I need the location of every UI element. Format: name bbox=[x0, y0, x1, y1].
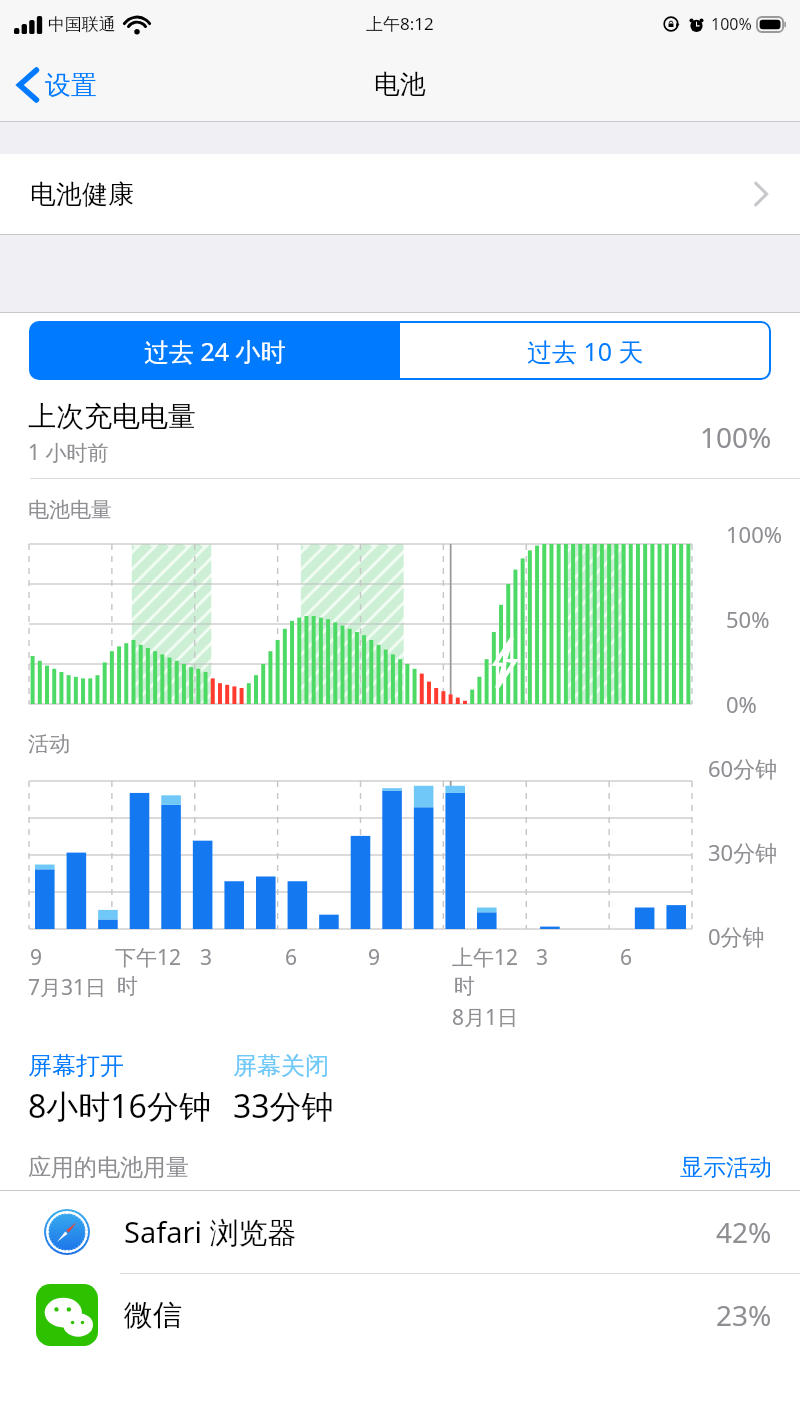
staticText: 电池 bbox=[374, 68, 426, 101]
staticText: 过去 10 天 bbox=[527, 334, 644, 368]
staticText: 电池健康 bbox=[30, 178, 134, 211]
button[interactable]: 过去 24 小时 bbox=[30, 322, 400, 379]
staticText: 上次充电电量 bbox=[28, 399, 196, 434]
button[interactable]: 过去 10 天 bbox=[400, 322, 770, 379]
staticText: 60分钟 bbox=[708, 753, 778, 783]
staticText: 0% bbox=[726, 689, 757, 719]
staticText: 42% bbox=[716, 1213, 772, 1251]
staticText: 30分钟 bbox=[708, 837, 778, 867]
staticText: 1 小时前 bbox=[28, 438, 109, 467]
staticText: 8月1日 bbox=[452, 1003, 519, 1032]
staticText: 时 bbox=[117, 973, 138, 999]
button[interactable]: 显示活动 bbox=[670, 1153, 800, 1182]
staticText: 显示活动 bbox=[680, 1153, 772, 1182]
staticText: 下午12 bbox=[115, 943, 182, 972]
staticText: 33分钟 bbox=[233, 1084, 334, 1128]
staticText: 50% bbox=[726, 604, 770, 634]
staticText: 活动 bbox=[28, 731, 70, 757]
button[interactable]: 设置 bbox=[0, 62, 111, 108]
staticText: 屏幕关闭 bbox=[233, 1051, 329, 1081]
staticText: 100% bbox=[726, 519, 783, 549]
staticText: 过去 24 小时 bbox=[144, 334, 286, 368]
staticText: 屏幕打开 bbox=[28, 1051, 124, 1081]
staticText: 7月31日 bbox=[28, 973, 107, 1002]
staticText: 9 bbox=[368, 943, 381, 972]
staticText: 0分钟 bbox=[708, 921, 765, 951]
staticText: 应用的电池用量 bbox=[28, 1153, 189, 1182]
staticText: 时 bbox=[454, 973, 475, 999]
button[interactable]: 微信 bbox=[0, 1274, 800, 1356]
staticText: 3 bbox=[200, 943, 213, 972]
staticText: 9 bbox=[30, 943, 43, 972]
staticText: 23% bbox=[716, 1296, 772, 1334]
staticText: 上午8:12 bbox=[366, 12, 434, 35]
staticText: 设置 bbox=[45, 69, 97, 102]
button[interactable]: 电池健康 bbox=[0, 154, 800, 234]
staticText: 100% bbox=[700, 418, 772, 456]
staticText: 100% bbox=[711, 13, 752, 35]
staticText: 电池电量 bbox=[28, 497, 112, 523]
button[interactable]: Safari 浏览器 bbox=[0, 1191, 800, 1273]
staticText: 3 bbox=[536, 943, 549, 972]
staticText: Safari 浏览器 bbox=[124, 1212, 297, 1252]
staticText: 6 bbox=[285, 943, 298, 972]
staticText: 微信 bbox=[124, 1297, 182, 1334]
staticText: 6 bbox=[620, 943, 633, 972]
staticText: 中国联通 bbox=[48, 14, 116, 35]
staticText: 8小时16分钟 bbox=[28, 1084, 211, 1128]
staticText: 上午12 bbox=[452, 943, 519, 972]
